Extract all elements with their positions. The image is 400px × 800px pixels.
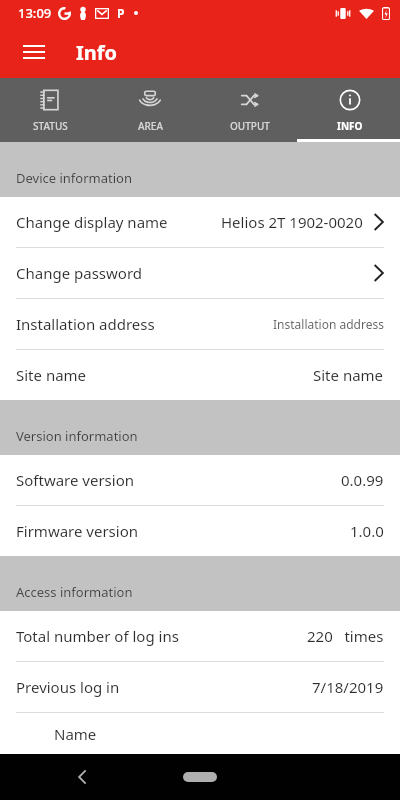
staticText: Installation address	[273, 316, 384, 332]
staticText: Total number of log ins	[16, 626, 179, 646]
staticText: Firmware version	[16, 521, 139, 541]
button[interactable]: Home	[183, 772, 217, 782]
staticText: Helios 2T 1902-0020	[221, 212, 363, 232]
button[interactable]: Change password	[0, 248, 400, 298]
button[interactable]: Open navigation menu	[12, 30, 56, 74]
staticText: Site name	[16, 365, 87, 385]
button[interactable]: Installation address	[0, 299, 400, 349]
button[interactable]: Total number of log ins	[0, 611, 400, 661]
button[interactable]: Site name	[0, 350, 400, 400]
button[interactable]: AREA	[100, 78, 200, 142]
staticText: 1.0.0	[350, 521, 384, 541]
staticText: Device information	[16, 169, 132, 187]
staticText: STATUS	[33, 119, 68, 133]
staticText: Access information	[16, 583, 133, 601]
button[interactable]: Software version	[0, 455, 400, 505]
button[interactable]: Previous log in	[0, 662, 400, 712]
staticText: Change display name	[16, 212, 168, 232]
staticText: 7/18/2019	[312, 677, 384, 697]
staticText: Software version	[16, 470, 135, 490]
staticText: P	[117, 5, 125, 21]
staticText: Site name	[313, 365, 384, 385]
staticText: OUTPUT	[230, 119, 270, 133]
staticText: Name	[54, 724, 97, 744]
button[interactable]: Name	[0, 713, 400, 754]
staticText: Change password	[16, 263, 143, 283]
staticText: AREA	[138, 119, 163, 133]
staticText: Installation address	[16, 314, 155, 334]
button[interactable]: Change display name	[0, 197, 400, 247]
staticText: 220 times	[307, 626, 384, 646]
staticText: Previous log in	[16, 677, 120, 697]
staticText: 0.0.99	[341, 470, 384, 490]
button[interactable]: INFO	[300, 78, 400, 142]
staticText: Info	[76, 39, 118, 66]
staticText: 13:09	[18, 4, 52, 22]
button[interactable]: Back	[66, 761, 98, 793]
staticText: Version information	[16, 427, 138, 445]
staticText: INFO	[337, 119, 363, 133]
button[interactable]: Firmware version	[0, 506, 400, 556]
button[interactable]: STATUS	[0, 78, 100, 142]
button[interactable]: OUTPUT	[200, 78, 300, 142]
